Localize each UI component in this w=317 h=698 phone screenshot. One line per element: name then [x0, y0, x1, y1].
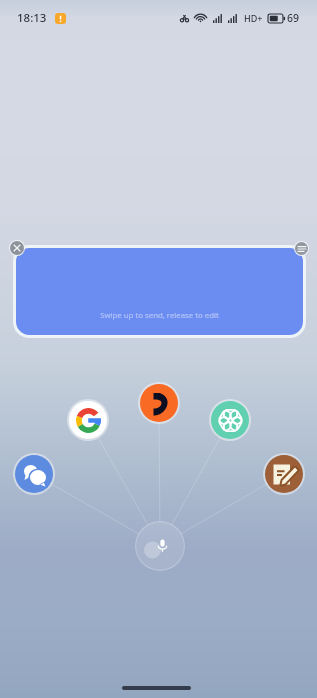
button[interactable]: Chat [15, 455, 53, 493]
button[interactable]: ChatGPT [211, 401, 249, 439]
staticText: 18:13 [17, 10, 47, 26]
button[interactable]: Doubao [140, 384, 178, 422]
button[interactable]: Close [10, 241, 24, 255]
staticText: 69 [287, 11, 300, 25]
button[interactable]: Notes [265, 455, 303, 493]
button[interactable]: Google [69, 401, 107, 439]
staticText: HD+ [244, 12, 263, 24]
button[interactable]: Swipe up to send, release to edit [16, 248, 303, 335]
staticText: Swipe up to send, release to edit [100, 310, 219, 321]
button[interactable]: Voice input [135, 521, 185, 571]
button[interactable]: Menu [295, 242, 308, 255]
